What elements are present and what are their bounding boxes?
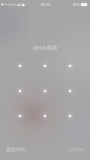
button[interactable]: 紧急呼叫	[4, 144, 28, 155]
staticText: 忘记密码	[68, 147, 84, 152]
button[interactable]: Pattern dot 5	[40, 86, 49, 95]
button[interactable]: Pattern dot 1	[15, 61, 24, 70]
staticText: 紧急呼叫	[6, 146, 26, 153]
button[interactable]: Pattern dot 2	[40, 61, 49, 70]
button[interactable]: Pattern dot 7	[15, 111, 24, 120]
button[interactable]: Pattern dot 8	[40, 111, 49, 120]
button[interactable]: Pattern dot 3	[65, 61, 74, 70]
button[interactable]: Pattern dot 4	[15, 86, 24, 95]
staticText: 中国移动	[4, 3, 16, 6]
staticText: 09:24	[40, 2, 49, 7]
staticText: 请绘制图案	[32, 45, 57, 51]
button[interactable]: Pattern dot 6	[65, 86, 74, 95]
button[interactable]: 忘记密码	[66, 145, 86, 154]
staticText: 87%	[73, 2, 80, 7]
button[interactable]: Pattern dot 9	[65, 111, 74, 120]
